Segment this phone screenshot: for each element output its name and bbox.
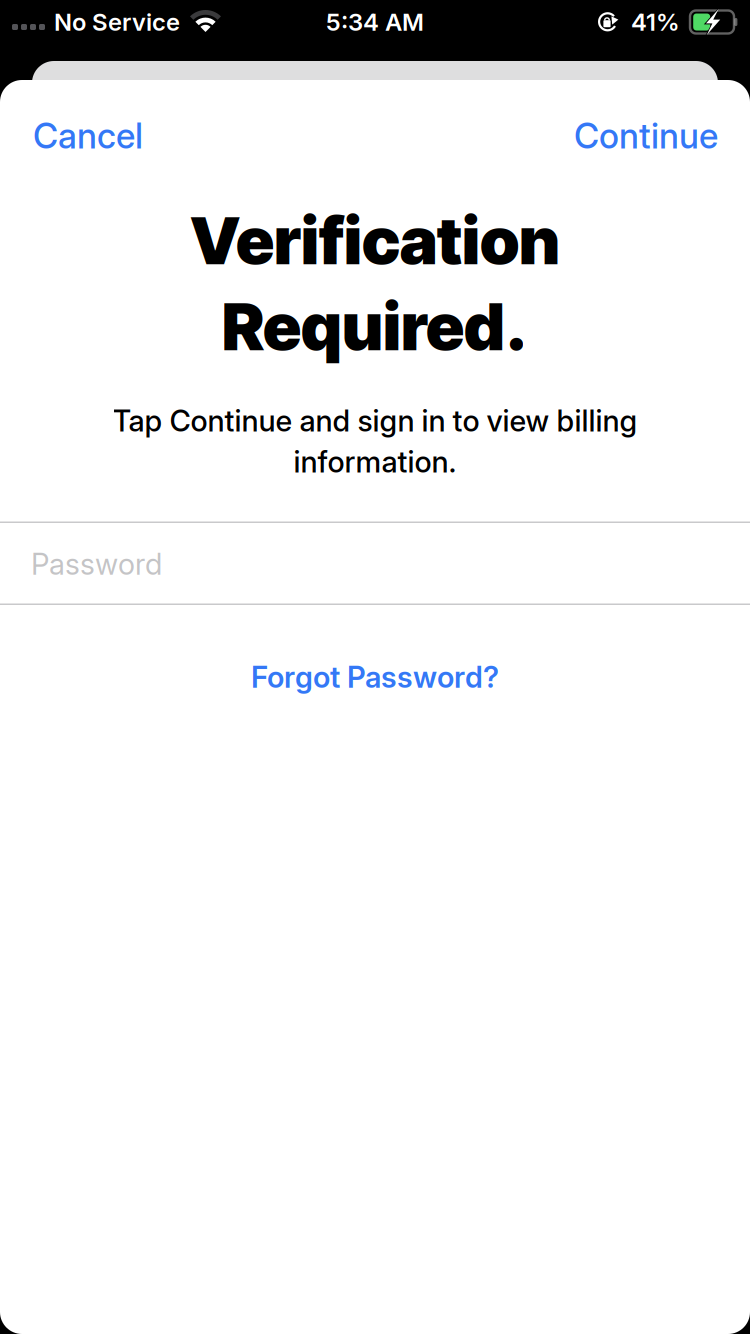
staticText: No Service [54, 7, 180, 36]
staticText: Continue [574, 115, 718, 157]
button[interactable]: Cancel [0, 104, 173, 168]
staticText: Cancel [33, 115, 143, 157]
button[interactable]: Forgot Password? [215, 647, 535, 707]
staticText: Password [31, 546, 162, 582]
staticText: 41% [631, 7, 680, 36]
staticText: 5:34 AM [326, 7, 424, 36]
staticText: Verification [190, 201, 560, 280]
staticText: Forgot Password? [251, 659, 499, 695]
staticText: Tap Continue and sign in to view billing [112, 403, 637, 438]
button[interactable]: Continue [538, 104, 750, 168]
staticText: information. [293, 444, 456, 479]
button[interactable]: Password [0, 523, 750, 605]
staticText: Required. [222, 287, 528, 366]
